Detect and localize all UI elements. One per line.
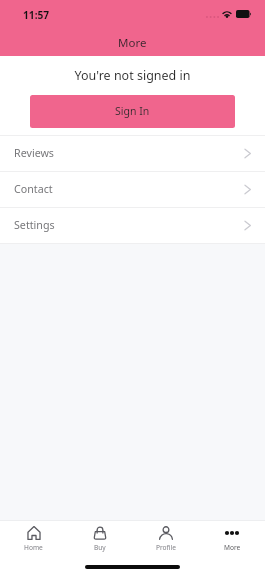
staticText: Reviews <box>14 146 54 161</box>
button[interactable]: Buy <box>67 521 133 557</box>
staticText: More <box>224 543 241 552</box>
button[interactable]: Home <box>0 521 67 557</box>
staticText: More <box>118 35 147 51</box>
staticText: You're not signed in <box>0 67 265 84</box>
staticText: 11:57 <box>23 8 50 22</box>
button[interactable]: Contact <box>0 172 265 207</box>
staticText: Buy <box>94 543 106 552</box>
button[interactable]: Profile <box>133 521 199 557</box>
staticText: Settings <box>14 218 55 233</box>
button[interactable]: Sign In <box>30 95 235 128</box>
staticText: Profile <box>156 543 176 552</box>
button[interactable]: Settings <box>0 208 265 243</box>
staticText: Contact <box>14 182 53 197</box>
staticText: Home <box>24 543 43 552</box>
button[interactable]: Reviews <box>0 136 265 171</box>
staticText: Sign In <box>115 104 150 118</box>
button[interactable]: More <box>199 521 265 557</box>
